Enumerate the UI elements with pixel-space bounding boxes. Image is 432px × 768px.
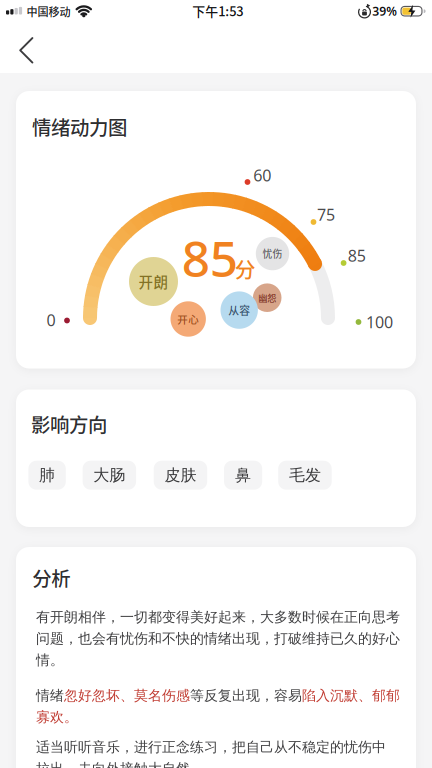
staticText: 85 [182,224,238,291]
staticText: 分 [235,253,256,283]
staticText: 情绪 [36,687,64,704]
staticText: 寡欢。 [36,708,78,726]
staticText: 忽好忽坏、莫名伤感 [64,687,190,704]
staticText: 开心 [177,311,199,327]
staticText: 等反复出现，容易 [190,687,302,704]
staticText: 0 [46,309,55,331]
staticText: 适当听听音乐，进行正念练习，把自己从不稳定的忧伤中 [36,738,386,756]
staticText: 幽怨 [258,291,276,304]
staticText: 问题，也会有忧伤和不快的情绪出现，打破维持已久的好心 [36,630,400,647]
staticText: 情。 [36,651,64,669]
staticText: 情绪动力图 [32,112,127,141]
staticText: 大肠 [93,465,125,485]
staticText: 从容 [228,302,250,318]
staticText: 100 [366,311,393,333]
staticText: 下午1:53 [192,1,243,20]
staticText: 有开朗相伴，一切都变得美好起来，大多数时候在正向思考 [36,608,400,626]
staticText: 中国移动 [27,3,71,19]
staticText: 开朗 [138,271,168,292]
staticText: 60 [253,164,271,186]
staticText: 皮肤 [164,465,196,485]
staticText: 鼻 [235,465,251,485]
staticText: 75 [317,204,335,225]
staticText: 39% [372,3,397,19]
staticText: 忧伤 [262,246,282,261]
staticText: 拉出，去向外接触大自然。 [36,760,204,768]
staticText: 陷入沉默、郁郁 [302,687,400,704]
staticText: 影响方向 [31,410,107,438]
button[interactable]: Back [19,37,33,63]
staticText: 85 [348,244,366,266]
staticText: 毛发 [289,465,321,485]
staticText: 肺 [39,465,55,485]
staticText: 分析 [32,563,70,592]
